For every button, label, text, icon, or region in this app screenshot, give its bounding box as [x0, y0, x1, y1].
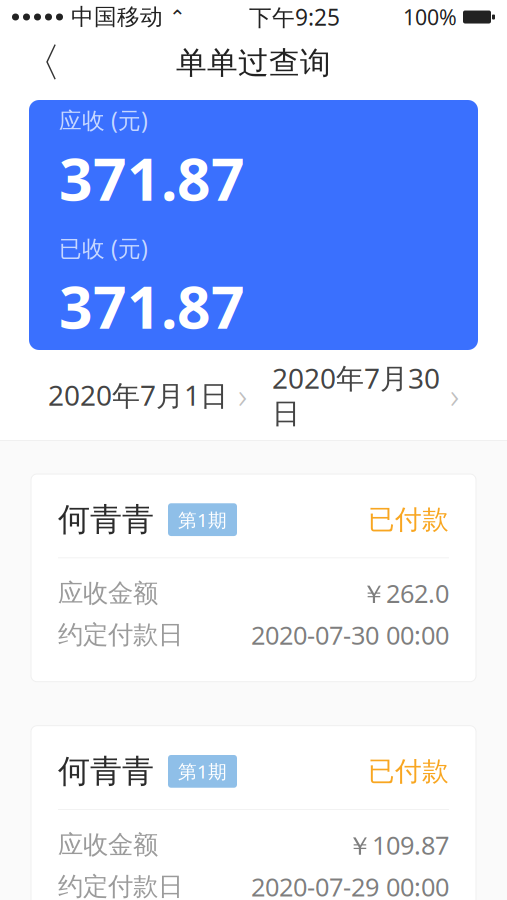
staticText: 应收 (元): [59, 105, 148, 135]
staticText: ⌃: [169, 6, 186, 28]
staticText: 约定付款日: [58, 871, 183, 900]
staticText: 100%: [403, 3, 457, 31]
button[interactable]: Back: [18, 40, 64, 86]
staticText: 371.87: [59, 267, 245, 345]
staticText: 〈: [21, 38, 61, 87]
staticText: 2020-07-29 00:00: [251, 870, 449, 900]
staticText: ￥262.0: [361, 576, 449, 610]
staticText: 已付款: [368, 755, 449, 788]
button[interactable]: 何青青: [0, 474, 507, 682]
staticText: 2020年7月30日: [272, 359, 440, 431]
button[interactable]: 2020年7月30日: [272, 359, 459, 431]
staticText: ›: [450, 372, 459, 418]
staticText: 第1期: [178, 759, 227, 784]
button[interactable]: 2020年7月1日: [48, 372, 247, 418]
staticText: 中国移动: [71, 3, 163, 31]
staticText: 371.87: [59, 139, 245, 217]
staticText: 应收金额: [58, 829, 158, 860]
staticText: 何青青: [58, 752, 154, 791]
staticText: 下午9:25: [249, 2, 340, 32]
staticText: 2020-07-30 00:00: [251, 618, 449, 652]
staticText: 2020年7月1日: [48, 376, 228, 414]
staticText: ￥109.87: [347, 828, 449, 862]
staticText: 应收金额: [58, 578, 158, 609]
staticText: 单单过查询: [176, 44, 331, 82]
staticText: 约定付款日: [58, 619, 183, 650]
staticText: 已付款: [368, 503, 449, 536]
staticText: 已收 (元): [59, 233, 148, 263]
staticText: 第1期: [178, 507, 227, 532]
staticText: 何青青: [58, 500, 154, 539]
button[interactable]: 何青青: [0, 726, 507, 900]
staticText: ›: [238, 372, 247, 418]
